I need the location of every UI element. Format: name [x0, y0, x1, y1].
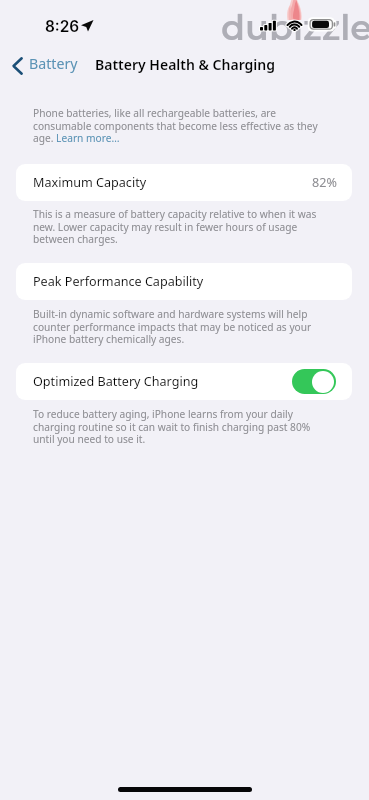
staticText: This is a measure of battery capacity re… — [33, 207, 331, 246]
button[interactable]: Optimized Battery Charging — [292, 369, 336, 394]
staticText: Peak Performance Capability — [33, 273, 204, 290]
staticText: Optimized Battery Charging — [33, 373, 199, 390]
staticText: Phone batteries, like all rechargeable b… — [33, 106, 331, 145]
staticText: 8:26 — [45, 17, 80, 36]
staticText: Built-in dynamic software and hardware s… — [33, 307, 331, 346]
staticText: 82% — [312, 174, 337, 191]
staticText: Battery Health & Charging — [95, 55, 275, 74]
staticText: To reduce battery aging, iPhone learns f… — [33, 407, 331, 446]
staticText: Maximum Capacity — [33, 174, 147, 191]
button[interactable]: Battery — [10, 54, 82, 73]
staticText: dubizzle — [221, 6, 369, 49]
staticText: Battery — [29, 54, 78, 73]
